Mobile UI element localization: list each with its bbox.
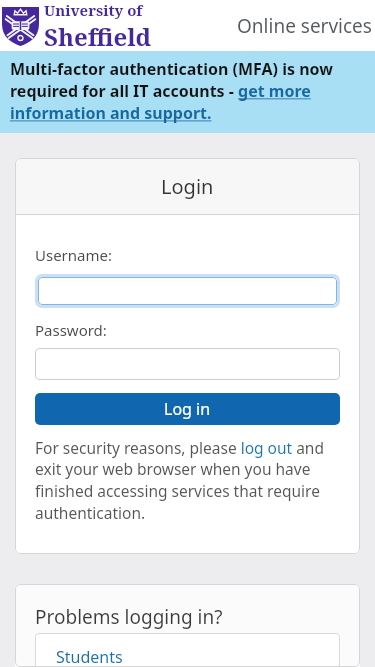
staticText: Log in — [164, 398, 211, 420]
staticText: For security reasons, please log out and… — [35, 437, 324, 524]
staticText: Sheffield — [44, 20, 152, 51]
button[interactable] — [35, 348, 340, 380]
button[interactable]: Multi-factor authentication (MFA) is now… — [0, 51, 375, 133]
staticText: University of — [44, 0, 143, 20]
button[interactable]: Log in — [35, 393, 340, 425]
staticText: Login — [161, 173, 214, 200]
staticText: Students — [56, 646, 123, 667]
staticText: Username: — [35, 245, 112, 265]
staticText: Online services — [237, 13, 372, 39]
staticText: Problems logging in? — [35, 604, 223, 630]
staticText: Password: — [35, 320, 107, 340]
button[interactable]: Students — [35, 633, 340, 667]
staticText: Multi-factor authentication (MFA) is now… — [10, 58, 333, 124]
button[interactable] — [38, 277, 337, 305]
